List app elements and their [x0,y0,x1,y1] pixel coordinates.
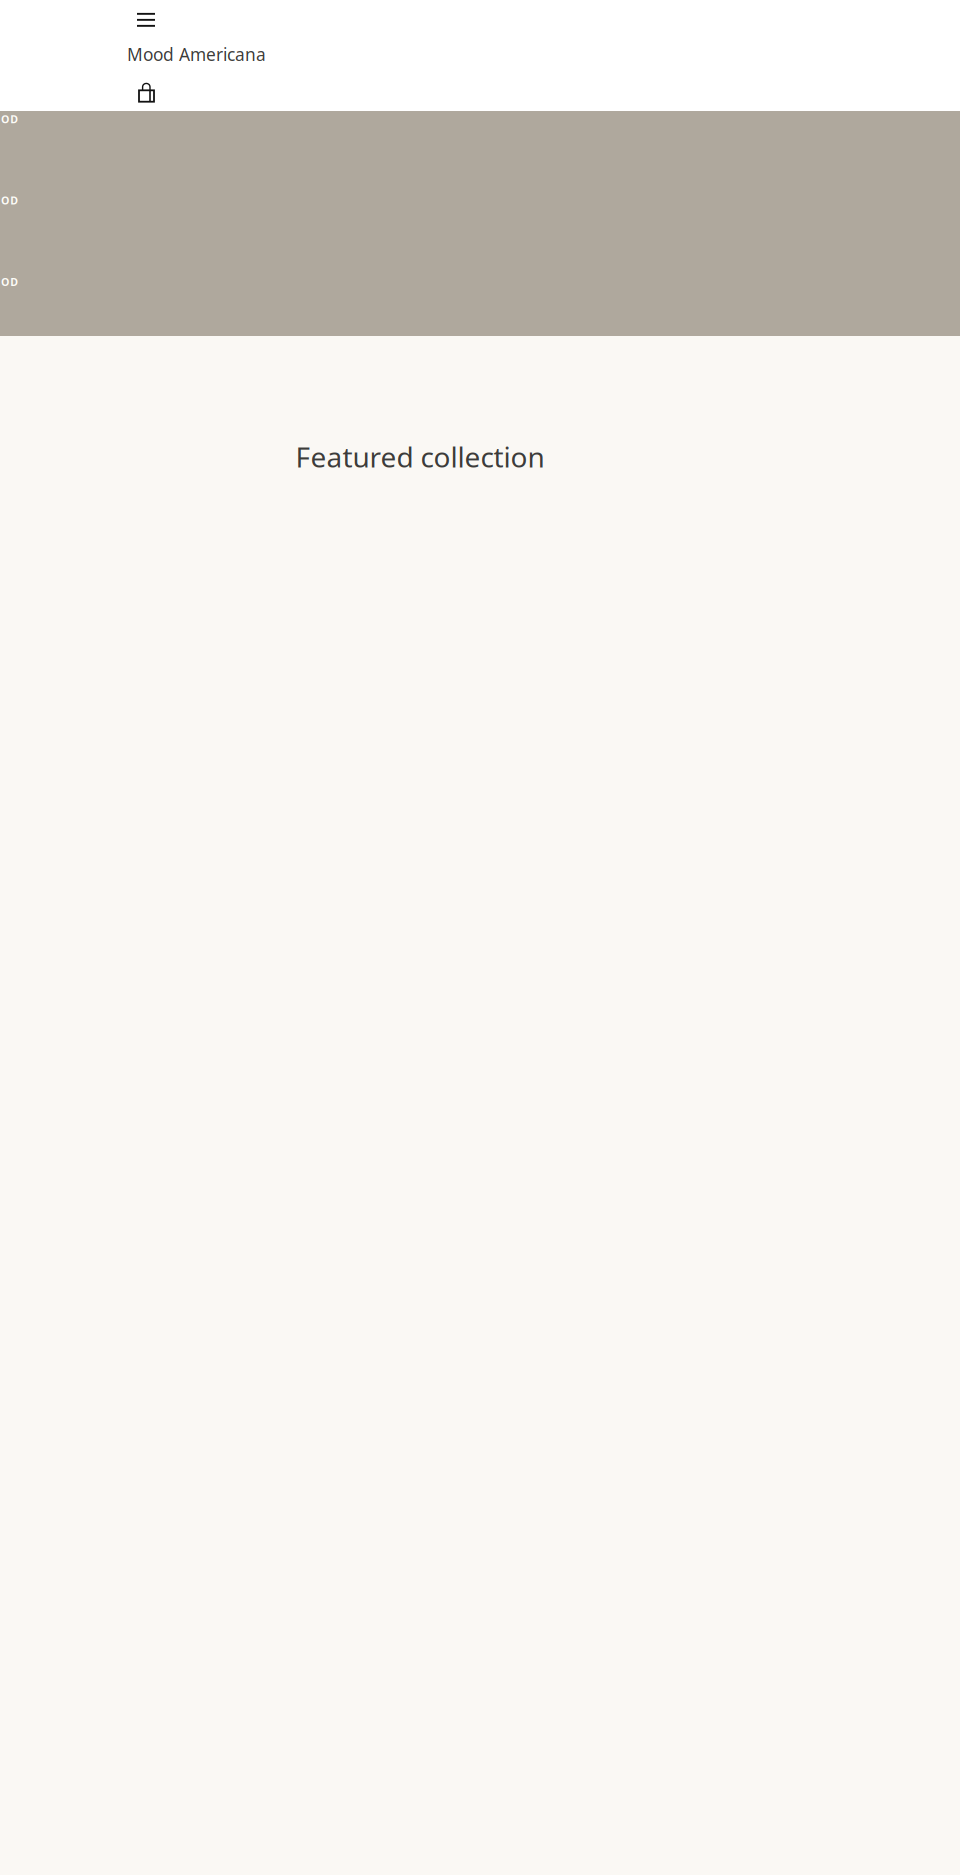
staticText: D [10,112,18,126]
staticText: O [1,275,9,289]
staticText: D [10,275,18,289]
staticText: Featured collection [295,438,544,475]
staticText: D [10,193,18,208]
staticText: O [1,193,9,208]
staticText: O [1,112,9,126]
button[interactable]: Mood Americana [0,27,266,66]
button[interactable]: Menu [0,0,155,27]
button[interactable]: Cart [0,66,155,104]
staticText: Mood Americana [127,43,266,66]
